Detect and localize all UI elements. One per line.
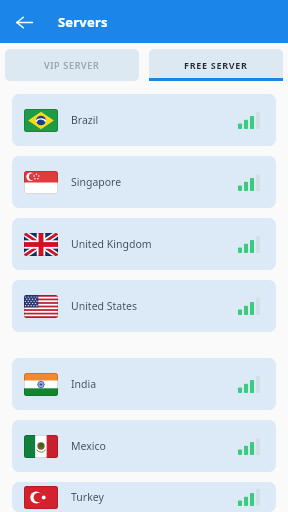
staticText: Brazil	[71, 113, 238, 127]
staticText: United States	[71, 299, 238, 313]
staticText: Servers	[58, 13, 108, 31]
staticText: VIP SERVER	[44, 59, 100, 71]
button[interactable]: FREE SERVER	[149, 49, 283, 81]
staticText: Turkey	[71, 490, 238, 504]
button[interactable]: United Kingdom	[12, 218, 276, 270]
staticText: FREE SERVER	[184, 59, 248, 71]
staticText: India	[71, 377, 238, 391]
staticText: Mexico	[71, 439, 238, 453]
button[interactable]: Mexico	[12, 420, 276, 472]
staticText: United Kingdom	[71, 237, 238, 251]
button[interactable]: India	[12, 358, 276, 410]
button[interactable]: United States	[12, 280, 276, 332]
staticText: Singapore	[71, 175, 238, 189]
button[interactable]: VIP SERVER	[5, 49, 139, 81]
button[interactable]: Back	[9, 7, 39, 37]
button[interactable]: Singapore	[12, 156, 276, 208]
button[interactable]: Turkey	[12, 482, 276, 512]
button[interactable]: Brazil	[12, 94, 276, 146]
